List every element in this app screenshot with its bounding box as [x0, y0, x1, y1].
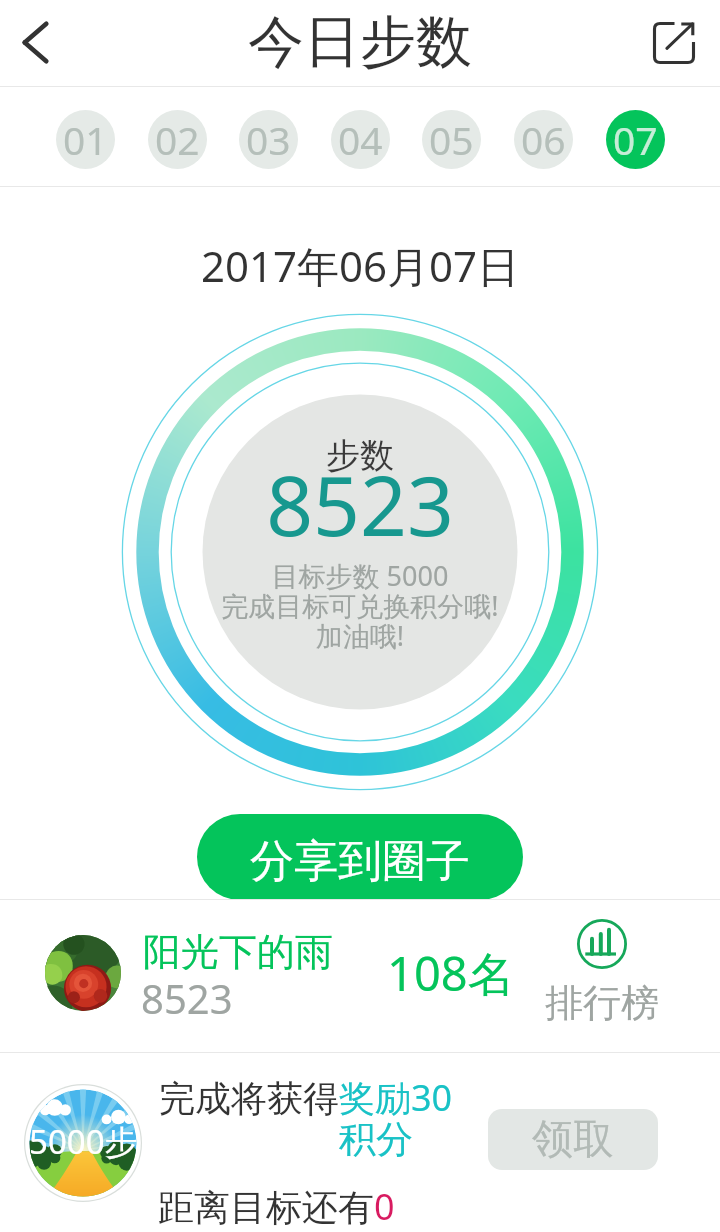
staticText: 步数	[0, 434, 720, 477]
staticText: 8523	[0, 448, 720, 560]
staticText: 领取	[532, 1114, 614, 1166]
staticText: 02	[155, 113, 200, 166]
staticText: 5000步	[29, 1119, 138, 1164]
button[interactable]: 阳光下的雨	[0, 900, 720, 1052]
button[interactable]: 04	[331, 110, 390, 169]
staticText: 01	[63, 113, 108, 166]
staticText: 完成目标可兑换积分哦!	[0, 587, 720, 624]
staticText: 03	[246, 113, 291, 166]
button[interactable]: 01	[56, 110, 115, 169]
staticText: 距离目标还有0	[158, 1182, 395, 1231]
button[interactable]: 02	[148, 110, 207, 169]
staticText: 2017年06月07日	[0, 237, 720, 294]
button[interactable]: 06	[514, 110, 573, 169]
staticText: 排行榜	[545, 979, 659, 1027]
staticText: 06	[521, 113, 566, 166]
staticText: 8523	[141, 971, 233, 1025]
staticText: 05	[429, 113, 474, 166]
staticText: 完成将获得奖励30	[159, 1073, 453, 1122]
staticText: 04	[338, 113, 383, 166]
button[interactable]: 05	[422, 110, 481, 169]
button[interactable]: 07	[606, 110, 665, 169]
button[interactable]: Share	[628, 0, 720, 86]
staticText: 今日步数	[248, 7, 472, 78]
staticText: 积分	[339, 1116, 413, 1163]
staticText: 分享到圈子	[250, 834, 470, 889]
staticText: 目标步数 5000	[0, 557, 720, 594]
staticText: 108名	[387, 941, 515, 1005]
button[interactable]: Back	[0, 0, 78, 86]
button[interactable]: 排行榜	[530, 912, 674, 1040]
button[interactable]: 领取	[488, 1109, 658, 1170]
staticText: 加油哦!	[0, 617, 720, 654]
button[interactable]: 分享到圈子	[197, 814, 523, 900]
staticText: 07	[613, 113, 658, 166]
button[interactable]: 03	[239, 110, 298, 169]
staticText: 阳光下的雨	[143, 928, 333, 976]
